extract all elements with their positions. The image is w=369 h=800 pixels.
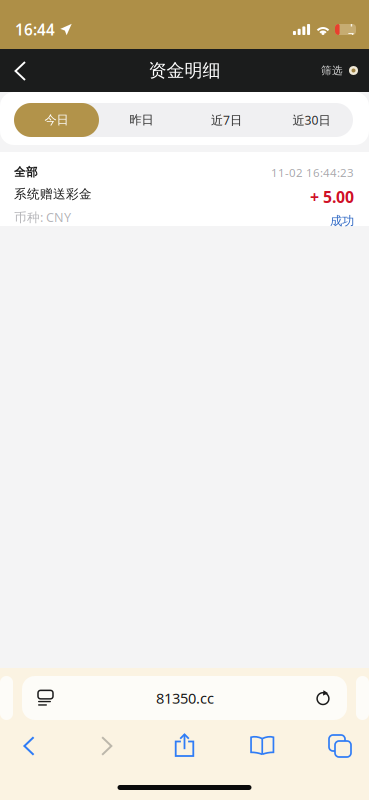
button[interactable]: 今日: [14, 103, 99, 137]
staticText: 今日: [44, 112, 68, 127]
staticText: 系统赠送彩金: [14, 186, 92, 202]
staticText: 16:44: [15, 19, 55, 40]
button[interactable]: Forward: [83, 731, 131, 761]
staticText: 17: [348, 15, 354, 44]
staticText: 币种: CNY: [14, 209, 71, 225]
button[interactable]: 近30日: [269, 103, 354, 137]
button[interactable]: 81350.cc: [22, 676, 347, 720]
staticText: 全部: [14, 165, 38, 179]
staticText: 近7日: [211, 112, 242, 128]
staticText: 资金明细: [148, 59, 220, 81]
staticText: 成功: [330, 213, 354, 228]
button[interactable]: 全部: [0, 152, 369, 226]
button[interactable]: Tabs: [316, 731, 364, 761]
button[interactable]: Back: [0, 49, 42, 92]
button[interactable]: Bookmarks: [238, 731, 286, 761]
button[interactable]: Back: [5, 731, 53, 761]
staticText: 11-02 16:44:23: [271, 165, 354, 180]
staticText: 81350.cc: [156, 688, 214, 708]
button[interactable]: 近7日: [184, 103, 269, 137]
button[interactable]: Share: [160, 731, 208, 761]
staticText: 筛选: [321, 64, 343, 77]
button[interactable]: 筛选: [307, 49, 369, 92]
staticText: 昨日: [129, 112, 153, 127]
staticText: + 5.00: [310, 186, 354, 207]
button[interactable]: 昨日: [99, 103, 184, 137]
staticText: 近30日: [292, 112, 330, 128]
